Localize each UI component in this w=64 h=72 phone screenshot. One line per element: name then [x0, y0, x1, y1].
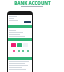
staticText: BANK ACCOUNT — [14, 0, 51, 6]
